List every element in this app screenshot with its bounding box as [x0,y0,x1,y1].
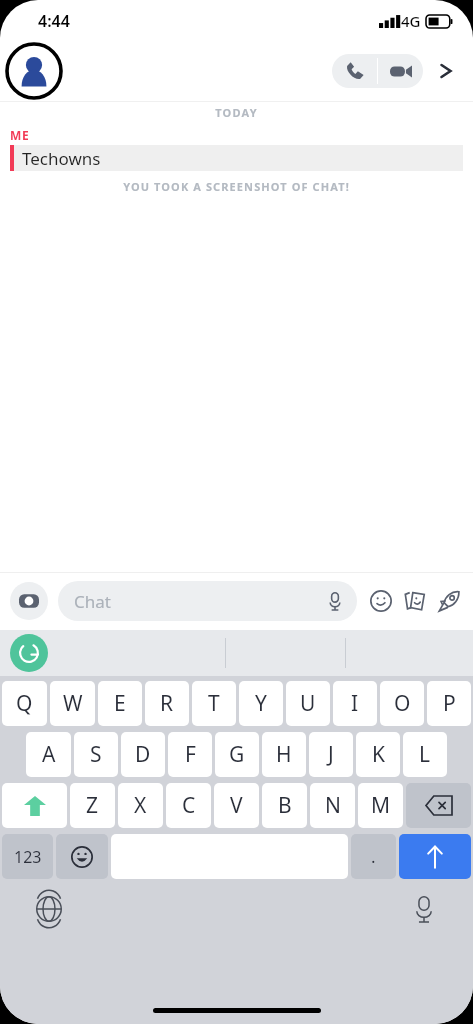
staticText: R [160,689,174,718]
staticText: 4:44 [38,10,70,32]
button[interactable]: . [351,834,396,879]
button[interactable]: Z [70,783,115,828]
button[interactable]: Y [239,681,283,726]
button[interactable]: Video call [378,54,423,88]
staticText: W [63,689,83,718]
staticText: A [42,740,56,769]
staticText: M [371,791,391,820]
button[interactable]: G [215,732,259,777]
staticText: K [372,740,385,769]
button[interactable]: Q [2,681,47,726]
staticText: Chat [74,590,329,613]
button[interactable]: X [118,783,163,828]
staticText: ME [10,127,30,143]
staticText: G [229,740,245,769]
button[interactable]: Voice call [332,54,377,88]
button[interactable]: Grammarly [10,634,48,672]
staticText: 4G [401,11,421,31]
button[interactable]: W [50,681,95,726]
button[interactable]: R [145,681,189,726]
button[interactable]: P [427,681,471,726]
button[interactable]: I [333,681,377,726]
button[interactable]: A [26,732,71,777]
staticText: Y [255,689,267,718]
button[interactable]: Emoji [56,834,108,879]
staticText: L [419,740,431,769]
button[interactable]: Voice input [407,892,441,926]
button[interactable]: Backspace [406,783,471,828]
button[interactable]: U [286,681,330,726]
staticText: O [394,689,411,718]
staticText: D [135,740,151,769]
button[interactable]: Shift [2,783,67,828]
staticText: F [185,740,196,769]
button[interactable]: O [380,681,424,726]
button[interactable]: T [192,681,236,726]
staticText: V [230,791,243,820]
button[interactable]: Cards [401,587,429,615]
button[interactable]: Games [435,587,463,615]
button[interactable]: 123 [2,834,53,879]
button[interactable]: K [356,732,400,777]
button[interactable]: N [310,783,355,828]
button[interactable]: S [74,732,118,777]
button[interactable]: Chat [58,581,357,621]
button[interactable]: Techowns [10,145,463,171]
staticText: Z [86,791,99,820]
staticText: U [300,689,316,718]
staticText: YOU TOOK A SCREENSHOT OF CHAT! [0,179,473,194]
staticText: TODAY [0,105,473,120]
staticText: P [443,689,456,718]
button[interactable]: C [166,783,211,828]
button[interactable]: F [168,732,212,777]
button[interactable]: Profile [4,41,64,101]
staticText: C [182,791,196,820]
button[interactable]: Stickers [367,587,395,615]
staticText: E [114,689,126,718]
button[interactable]: More [431,56,461,86]
button[interactable]: D [121,732,165,777]
button[interactable]: E [98,681,142,726]
button[interactable]: V [214,783,259,828]
button[interactable]: Send [399,834,471,879]
staticText: S [90,740,102,769]
staticText: Q [16,689,33,718]
button[interactable]: H [262,732,306,777]
staticText: I [351,689,359,718]
staticText: 123 [14,846,42,868]
staticText: T [208,689,220,718]
staticText: B [278,791,292,820]
staticText: H [276,740,292,769]
staticText: X [134,791,147,820]
staticText: . [371,845,376,868]
staticText: J [328,740,334,769]
button[interactable]: Camera [10,582,48,620]
staticText: Techowns [22,147,101,170]
button[interactable]: J [309,732,353,777]
button[interactable]: L [403,732,447,777]
button[interactable]: M [358,783,403,828]
button[interactable]: B [262,783,307,828]
button[interactable]: Change language [32,892,66,926]
staticText: N [325,791,341,820]
